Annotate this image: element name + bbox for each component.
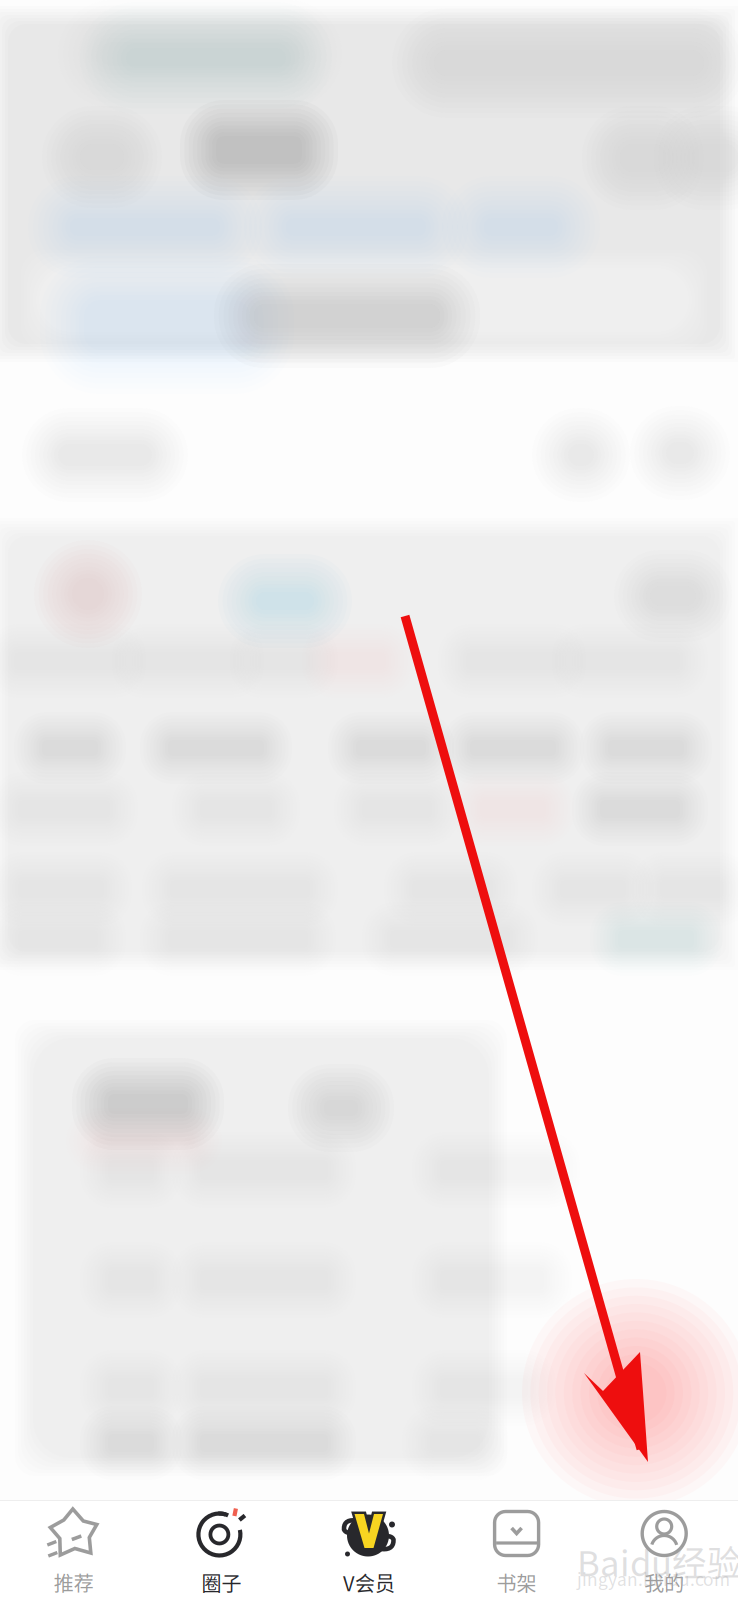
staticText: V会员 bbox=[343, 1568, 395, 1597]
staticText: jingyan.baidu.com bbox=[577, 1566, 730, 1591]
staticText: 圈子 bbox=[201, 1568, 241, 1597]
staticText: Baidu经验 bbox=[577, 1536, 738, 1586]
button[interactable]: 推荐 bbox=[0, 1500, 148, 1600]
button[interactable]: 书架 bbox=[443, 1500, 590, 1600]
staticText: 书架 bbox=[497, 1568, 537, 1597]
button[interactable]: 圈子 bbox=[148, 1500, 295, 1600]
button[interactable]: 我的 bbox=[590, 1500, 738, 1600]
button[interactable]: V会员 bbox=[295, 1500, 443, 1600]
staticText: 推荐 bbox=[54, 1568, 94, 1597]
staticText: 我的 bbox=[644, 1568, 684, 1597]
